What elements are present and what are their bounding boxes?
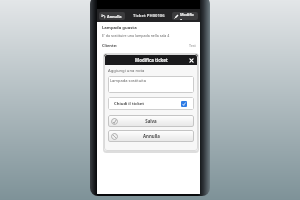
staticText: Modifica ticket bbox=[135, 57, 168, 63]
button[interactable]: Annulla bbox=[99, 12, 125, 20]
staticText: E' da sostituire una lampada nella sala … bbox=[102, 33, 170, 38]
staticText: Salva bbox=[145, 118, 157, 124]
button[interactable]: Chiudi bbox=[187, 56, 195, 64]
button[interactable]: Lampada sostituita bbox=[108, 76, 194, 93]
staticText: Cliente: bbox=[102, 43, 118, 48]
button[interactable]: Chiudi il ticket bbox=[108, 97, 194, 110]
button[interactable]: Salva bbox=[108, 115, 194, 127]
staticText: Chiudi il ticket bbox=[114, 101, 145, 107]
staticText: Test bbox=[189, 43, 196, 48]
staticText: Annulla bbox=[107, 14, 122, 19]
staticText: Modifica bbox=[180, 12, 196, 20]
button[interactable]: Modifica bbox=[172, 12, 198, 20]
staticText: Lampada sostituita bbox=[110, 78, 146, 83]
staticText: Annulla bbox=[143, 133, 160, 139]
button[interactable]: Annulla bbox=[108, 130, 194, 142]
staticText: Ticket PH00106 bbox=[133, 13, 165, 19]
staticText: Aggiungi una nota bbox=[108, 68, 145, 74]
staticText: Lampada guasta bbox=[102, 25, 137, 31]
